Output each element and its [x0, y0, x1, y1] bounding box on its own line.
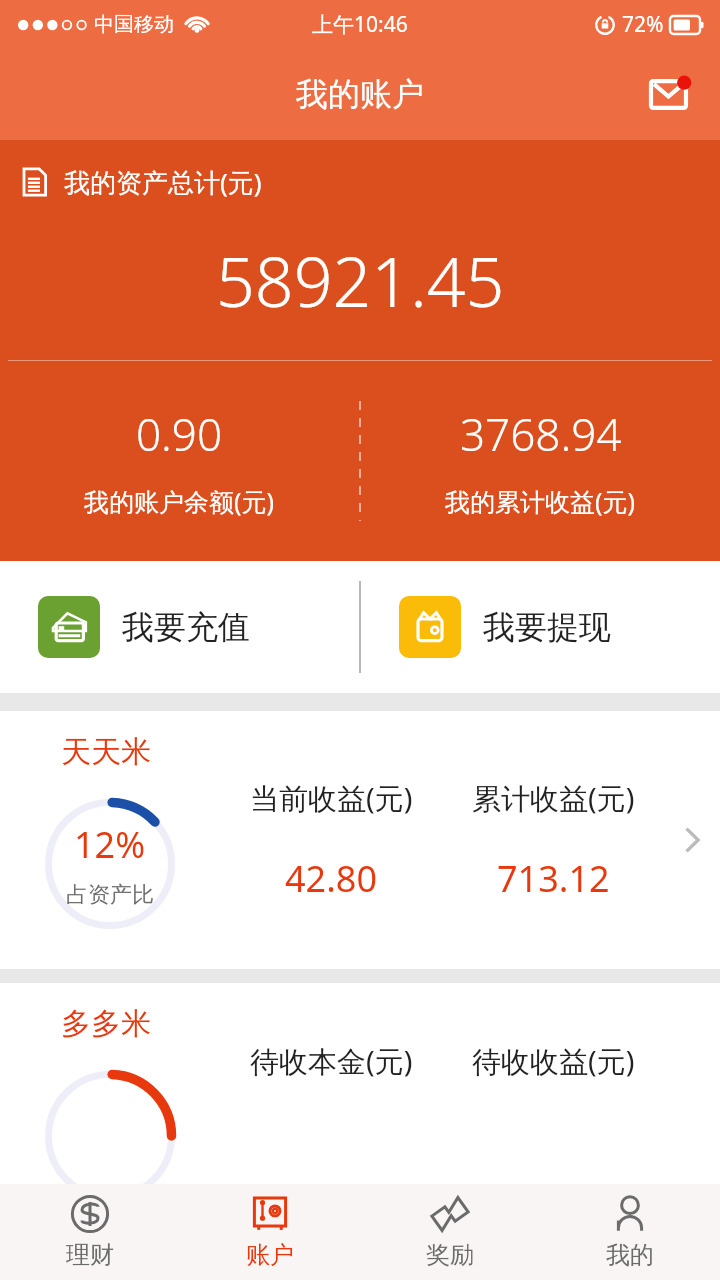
button[interactable]: 我要充值: [0, 561, 359, 693]
button[interactable]: Messages: [646, 66, 702, 122]
button[interactable]: 多多米: [0, 983, 720, 1203]
staticText: 我要提现: [483, 607, 611, 647]
staticText: 我的累计收益(元): [445, 484, 636, 518]
staticText: 待收收益(元): [472, 1041, 635, 1081]
button[interactable]: 我要提现: [361, 561, 720, 693]
staticText: 中国移动: [94, 12, 174, 37]
staticText: 713.12: [497, 854, 610, 903]
staticText: 72%: [622, 10, 664, 39]
staticText: 累计收益(元): [472, 778, 635, 818]
staticText: 12%: [74, 820, 146, 869]
staticText: 42.80: [285, 854, 378, 903]
staticText: 占资产比: [66, 881, 154, 909]
staticText: 当前收益(元): [250, 778, 413, 818]
button[interactable]: 理财: [0, 1184, 180, 1280]
button[interactable]: 账户: [180, 1184, 360, 1280]
button[interactable]: 我的: [540, 1184, 720, 1280]
button[interactable]: 奖励: [360, 1184, 540, 1280]
button[interactable]: 天天米: [0, 711, 720, 969]
staticText: 我的: [606, 1240, 654, 1270]
staticText: 我的资产总计(元): [64, 164, 262, 200]
staticText: 我要充值: [122, 607, 250, 647]
staticText: 58921.45: [216, 234, 505, 327]
staticText: 多多米: [61, 1005, 151, 1043]
staticText: 上午10:46: [312, 10, 408, 39]
staticText: 我的账户余额(元): [84, 484, 275, 518]
staticText: 待收本金(元): [250, 1041, 413, 1081]
staticText: 账户: [246, 1240, 294, 1270]
staticText: 0.90: [136, 404, 223, 464]
staticText: 理财: [66, 1240, 114, 1270]
staticText: 天天米: [61, 733, 151, 771]
staticText: 我的账户: [296, 74, 424, 114]
staticText: 奖励: [426, 1240, 474, 1270]
staticText: 3768.94: [460, 404, 622, 464]
